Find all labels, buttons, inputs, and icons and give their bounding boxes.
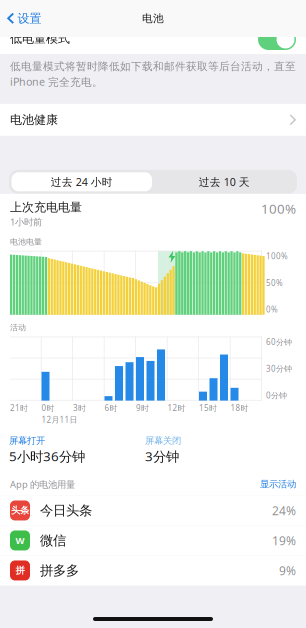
button[interactable]: 头条 [0, 495, 306, 525]
staticText: 9% [279, 562, 296, 578]
button[interactable]: 过去 10 天 [154, 172, 294, 191]
button[interactable]: 设置 [0, 0, 49, 37]
staticText: 屏幕打开 [9, 435, 45, 446]
staticText: 低电量模式将暂时降低如下载和邮件获取等后台活动，直至 [10, 60, 296, 73]
staticText: 30分钟 [266, 363, 292, 374]
staticText: 18时 [230, 403, 248, 413]
staticText: 21时 [10, 403, 28, 413]
staticText: 拼 [15, 565, 24, 576]
staticText: 显示活动 [260, 478, 296, 490]
staticText: 0分钟 [266, 390, 287, 401]
staticText: 24% [272, 502, 296, 518]
staticText: 微信 [40, 532, 66, 549]
button[interactable]: 拼 [0, 555, 306, 585]
staticText: 60分钟 [266, 337, 292, 347]
staticText: 屏幕关闭 [145, 435, 181, 446]
staticText: 低电量模式 [10, 31, 70, 46]
staticText: 今日头条 [40, 502, 92, 519]
staticText: 头条 [11, 505, 29, 516]
staticText: 19% [272, 532, 296, 548]
staticText: 12时 [167, 403, 185, 413]
staticText: 100% [266, 251, 288, 261]
staticText: 12月11日 [41, 414, 77, 425]
staticText: 过去 10 天 [199, 175, 250, 189]
staticText: 过去 24 小时 [51, 175, 113, 189]
staticText: 15时 [199, 403, 217, 413]
staticText: App 的电池用量 [10, 478, 75, 490]
staticText: 3时 [73, 403, 86, 413]
staticText: 0% [266, 304, 278, 315]
staticText: 1小时前 [10, 216, 42, 228]
staticText: 3分钟 [145, 447, 179, 465]
staticText: 5小时36分钟 [9, 447, 85, 465]
staticText: 9时 [136, 403, 149, 413]
staticText: 100% [261, 200, 296, 217]
staticText: 0时 [41, 403, 54, 413]
staticText: 电池健康 [10, 112, 58, 127]
staticText: W [15, 534, 24, 547]
button[interactable]: 显示活动 [260, 478, 296, 490]
staticText: iPhone 完全充电。 [10, 75, 103, 89]
staticText: 活动 [10, 323, 26, 333]
button[interactable]: W [0, 525, 306, 555]
staticText: 6时 [104, 403, 117, 413]
staticText: 上次充电电量 [10, 200, 82, 214]
staticText: 拼多多 [40, 562, 79, 579]
staticText: 50% [266, 277, 283, 288]
staticText: 电池电量 [10, 237, 42, 247]
button[interactable]: 过去 24 小时 [11, 172, 152, 191]
button[interactable]: 电池健康 [0, 104, 306, 136]
staticText: 电池 [142, 12, 164, 25]
staticText: 设置 [17, 11, 41, 26]
